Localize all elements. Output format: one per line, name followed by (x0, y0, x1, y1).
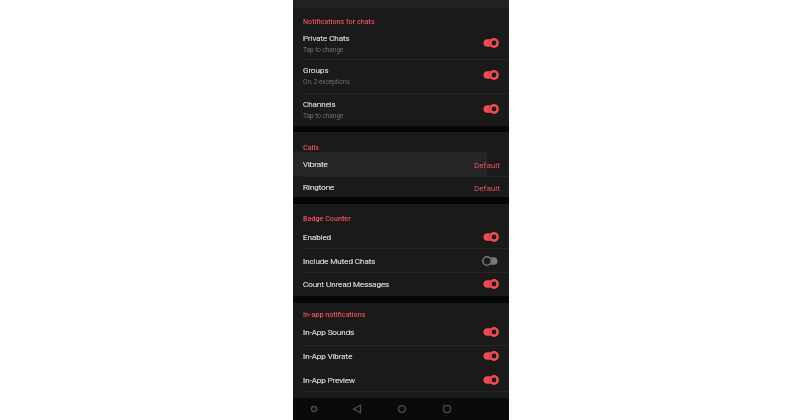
button[interactable]: Vibrate (293, 152, 509, 176)
staticText: In-App Vibrate (303, 352, 353, 361)
staticText: In-App Preview (303, 376, 356, 385)
staticText: Ringtone (303, 183, 335, 192)
staticText: Notifications for chats (303, 17, 375, 25)
staticText: On, 2 exceptions (303, 78, 350, 86)
button[interactable]: In-App Preview (293, 368, 509, 392)
button[interactable]: In-App Vibrate (293, 344, 509, 368)
button[interactable]: Channels (293, 92, 509, 125)
staticText: Vibrate (303, 160, 328, 169)
staticText: Default (474, 183, 500, 192)
button[interactable]: Groups (293, 58, 509, 91)
staticText: Calls (303, 143, 319, 151)
button[interactable]: Recent apps (437, 398, 457, 420)
staticText: Groups (303, 66, 329, 75)
staticText: Count Unread Messages (303, 280, 390, 289)
staticText: In-App Sounds (303, 328, 355, 337)
button[interactable]: Home (392, 398, 412, 420)
button[interactable]: In-App Sounds (293, 320, 509, 344)
staticText: Enabled (303, 233, 332, 242)
button[interactable]: Include Muted Chats (293, 249, 509, 273)
button[interactable]: Assistant (304, 398, 324, 420)
button[interactable]: Enabled (293, 225, 509, 249)
button[interactable]: Private Chats (293, 26, 509, 59)
staticText: Channels (303, 100, 336, 109)
staticText: Include Muted Chats (303, 257, 376, 266)
staticText: Badge Counter (303, 214, 351, 222)
staticText: In-app notifications (303, 310, 366, 318)
staticText: Tap to change (303, 46, 344, 54)
staticText: Tap to change (303, 112, 344, 120)
staticText: Default (474, 160, 500, 169)
button[interactable]: Count Unread Messages (293, 272, 509, 296)
staticText: Private Chats (303, 34, 350, 43)
button[interactable]: Ringtone (293, 175, 509, 199)
button[interactable]: Back (347, 398, 367, 420)
